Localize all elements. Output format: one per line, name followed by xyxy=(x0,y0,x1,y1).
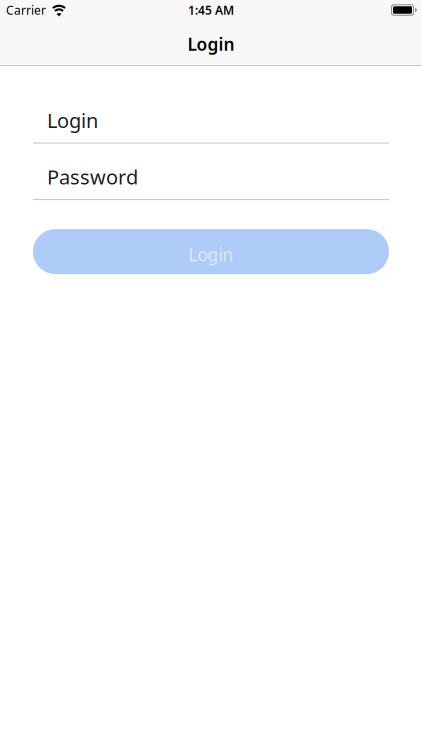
button[interactable]: Login xyxy=(33,107,389,144)
staticText: 1:45 AM xyxy=(188,2,234,18)
staticText: Login xyxy=(47,107,98,134)
staticText: Carrier xyxy=(6,2,46,18)
staticText: Password xyxy=(47,164,138,190)
staticText: Login xyxy=(188,243,233,266)
button[interactable]: Password xyxy=(33,164,389,200)
staticText: Login xyxy=(187,32,234,55)
button[interactable]: Login xyxy=(33,229,389,274)
